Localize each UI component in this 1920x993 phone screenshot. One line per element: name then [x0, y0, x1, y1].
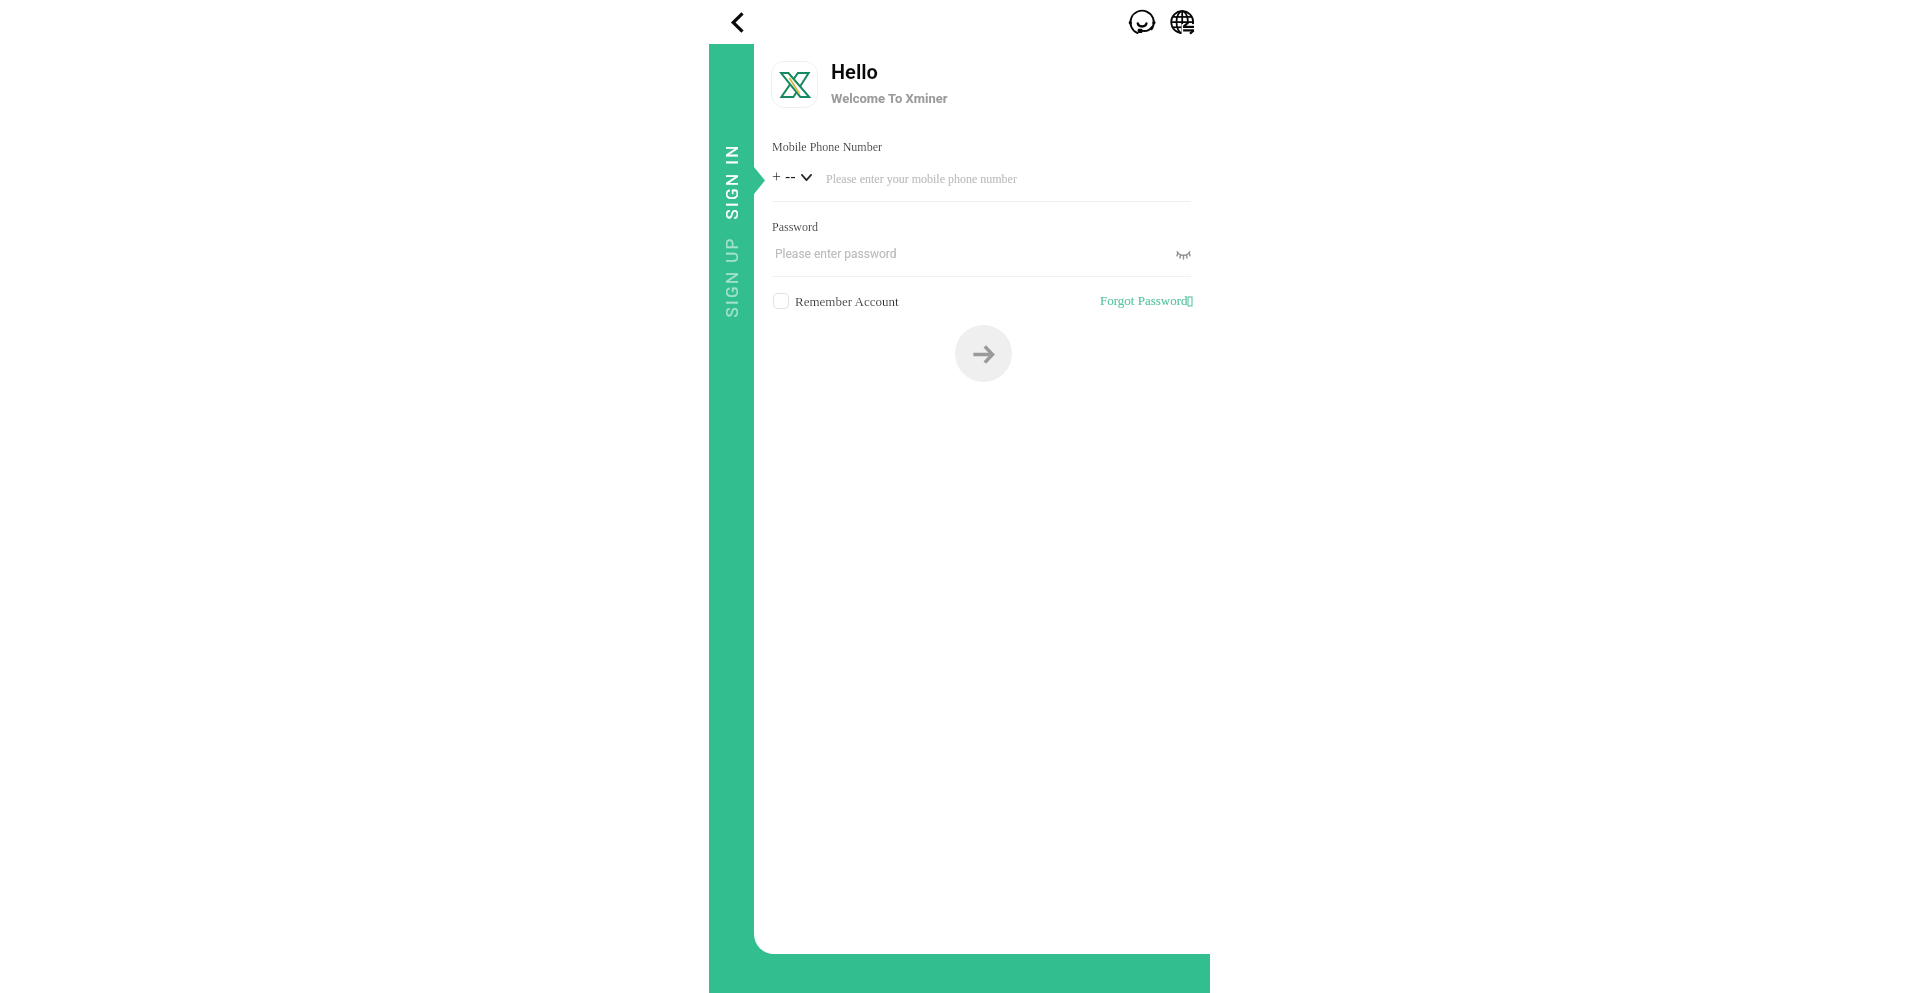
staticText: SIGN IN [721, 142, 741, 219]
button[interactable]: Customer service [1126, 7, 1158, 39]
staticText: + -- [772, 168, 796, 186]
button[interactable]: + -- [772, 166, 812, 188]
button[interactable]: Remember Account [773, 292, 899, 310]
button[interactable]: Show password [1172, 244, 1194, 266]
staticText: Welcome To Xminer [831, 91, 948, 106]
staticText: Remember Account [795, 294, 899, 308]
button[interactable]: Back [721, 5, 755, 39]
button[interactable]: SIGN IN [709, 120, 754, 240]
button[interactable]: Sign in [955, 325, 1012, 382]
staticText: Please enter your mobile phone number [826, 172, 1017, 185]
staticText: Mobile Phone Number [772, 140, 882, 153]
button[interactable]: Language [1167, 7, 1199, 39]
button[interactable]: Forgot Password [1100, 293, 1192, 307]
staticText: Forgot Password [1100, 293, 1188, 307]
staticText: SIGN UP [721, 235, 741, 317]
staticText: Password [772, 220, 819, 233]
staticText: Hello [831, 60, 878, 83]
button[interactable]: SIGN UP [709, 215, 754, 335]
staticText: Please enter password [775, 247, 897, 261]
